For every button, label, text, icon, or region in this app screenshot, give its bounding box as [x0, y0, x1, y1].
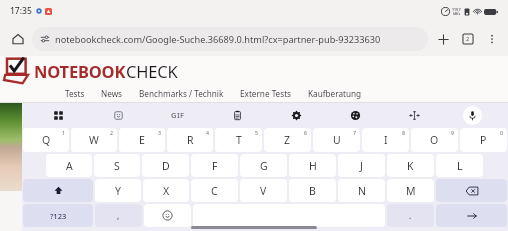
button[interactable]: Shift [23, 179, 93, 202]
button[interactable]: Voice input [463, 106, 482, 125]
staticText: GIF [171, 110, 185, 120]
staticText: M [406, 184, 416, 198]
button[interactable]: U [313, 128, 360, 152]
button[interactable]: Kaufberatung [301, 86, 369, 101]
button[interactable]: Text editing [405, 106, 423, 124]
button[interactable]: Externe Tests [233, 86, 299, 101]
staticText: notebookcheck.com/Google-Suche.36689.0.h… [55, 33, 381, 46]
button[interactable]: M [387, 179, 434, 202]
staticText: O [430, 133, 439, 147]
button[interactable]: Stickers [109, 106, 127, 124]
staticText: Kaufberatung [308, 88, 362, 99]
button[interactable]: V [240, 179, 287, 202]
staticText: 5 [255, 129, 258, 136]
button[interactable]: X [143, 179, 189, 202]
button[interactable]: Home [6, 27, 30, 51]
button[interactable]: S [94, 154, 140, 177]
staticText: D [162, 159, 170, 173]
staticText: S [114, 159, 120, 173]
staticText: News [101, 88, 123, 99]
button[interactable]: W [71, 128, 117, 152]
staticText: A [66, 159, 73, 173]
button[interactable]: Space [193, 204, 385, 227]
staticText: kB/s [453, 12, 461, 16]
staticText: 17:35 [10, 5, 32, 17]
button[interactable]: Backspace [436, 179, 507, 202]
staticText: Benchmarks / Technik [139, 88, 224, 99]
staticText: , [117, 210, 120, 221]
button[interactable]: E [119, 128, 165, 152]
button[interactable]: B [289, 179, 336, 202]
button[interactable]: Comma [95, 204, 142, 227]
staticText: 6 [304, 129, 307, 136]
button[interactable]: Clipboard [228, 106, 246, 124]
button[interactable]: Benchmarks / Technik [132, 86, 231, 101]
staticText: 9 [451, 129, 454, 136]
staticText: Q [42, 133, 51, 147]
staticText: N [358, 184, 366, 198]
button[interactable]: T [215, 128, 262, 152]
button[interactable]: Tests [58, 86, 92, 101]
staticText: 119,7 [452, 7, 461, 12]
button[interactable]: N [338, 179, 385, 202]
button[interactable]: G [240, 154, 287, 177]
staticText: L [457, 159, 463, 173]
button[interactable]: Z [264, 128, 311, 152]
staticText: I [384, 133, 388, 147]
staticText: Tests [65, 88, 85, 99]
staticText: K [407, 159, 414, 173]
button[interactable]: Emoji [144, 204, 191, 227]
button[interactable]: Y [95, 179, 141, 202]
button[interactable]: notebookcheck.com/Google-Suche.36689.0.h… [32, 27, 428, 51]
button[interactable]: J [338, 154, 385, 177]
button[interactable]: Themes [346, 106, 364, 124]
staticText: 8 [402, 129, 405, 136]
button[interactable]: News [94, 86, 130, 101]
staticText: C [211, 184, 218, 198]
button[interactable]: Keyboard apps [49, 106, 67, 124]
staticText: F [212, 159, 218, 173]
staticText: J [360, 159, 363, 173]
staticText: Y [115, 184, 121, 198]
staticText: NOTEBOOK [34, 60, 126, 82]
button[interactable]: New tab [432, 28, 454, 50]
staticText: U [333, 133, 341, 147]
button[interactable]: More options [482, 29, 502, 49]
button[interactable]: C [191, 179, 238, 202]
button[interactable]: Settings [287, 106, 305, 124]
button[interactable]: Q [23, 128, 69, 152]
staticText: CHECK [126, 60, 178, 82]
staticText: . [409, 210, 412, 221]
staticText: E [139, 133, 145, 147]
button[interactable]: Enter [436, 204, 507, 227]
staticText: Z [284, 133, 291, 147]
staticText: R [187, 133, 194, 147]
button[interactable]: Open tabs: 2 [457, 28, 479, 50]
button[interactable]: F [191, 154, 238, 177]
staticText: V [260, 184, 267, 198]
button[interactable]: A [46, 154, 92, 177]
staticText: 4 [206, 129, 209, 136]
staticText: 2 [466, 35, 470, 43]
staticText: W [89, 133, 99, 147]
staticText: 3 [158, 129, 161, 136]
button[interactable]: I [362, 128, 409, 152]
staticText: 2 [110, 129, 113, 136]
button[interactable]: L [436, 154, 483, 177]
button[interactable]: GIF [168, 108, 188, 122]
staticText: B [309, 184, 316, 198]
staticText: P [480, 133, 487, 147]
button[interactable]: O [411, 128, 458, 152]
staticText: 0 [500, 129, 503, 136]
button[interactable]: D [142, 154, 189, 177]
button[interactable]: ?123 [23, 204, 93, 227]
button[interactable]: H [289, 154, 336, 177]
staticText: 7 [353, 129, 356, 136]
button[interactable]: R [167, 128, 213, 152]
staticText: X [163, 184, 170, 198]
button[interactable]: P [460, 128, 507, 152]
staticText: Externe Tests [240, 88, 292, 99]
button[interactable]: K [387, 154, 434, 177]
staticText: 1 [62, 129, 65, 136]
